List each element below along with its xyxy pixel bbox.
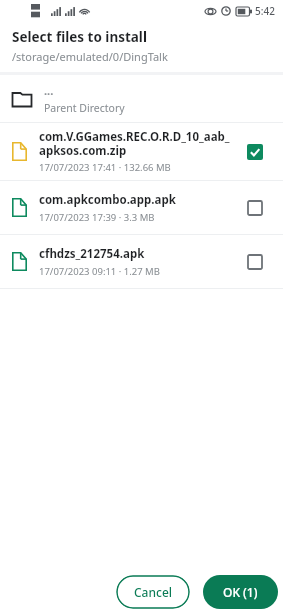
button[interactable]: Not selected [241,194,269,222]
button[interactable]: OK (1) [203,575,278,609]
staticText: cfhdzs_212754.apk [39,246,145,262]
staticText: com.apkcombo.app.apk [39,192,176,208]
staticText: 5:42 [255,4,275,18]
staticText: Select files to install [12,28,147,46]
button[interactable]: cfhdzs_212754.apk [0,235,283,288]
button[interactable]: Not selected [241,248,269,276]
staticText: Parent Directory [44,101,125,115]
button[interactable]: com.apkcombo.app.apk [0,181,283,234]
staticText: /storage/emulated/0/DingTalk [12,49,168,64]
staticText: 17/07/2023 17:41 · 132.66 MB [39,161,171,174]
button[interactable]: com.V.GGames.REC.O.R.D_10_aab_ apksos.co… [0,123,283,180]
staticText: Cancel [134,584,173,600]
button[interactable]: Selected [241,138,269,166]
button[interactable]: Cancel [116,575,190,609]
staticText: 17/07/2023 09:11 · 1.27 MB [39,265,160,278]
staticText: OK (1) [223,584,258,600]
staticText: 17/07/2023 17:39 · 3.3 MB [39,211,155,224]
button[interactable]: ... [0,75,283,122]
staticText: ... [44,83,54,98]
staticText: com.V.GGames.REC.O.R.D_10_aab_ apksos.co… [39,129,230,158]
